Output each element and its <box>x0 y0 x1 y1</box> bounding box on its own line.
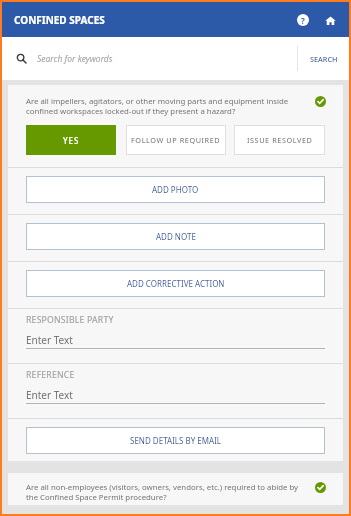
staticText: Are all impellers, agitators, or other m… <box>26 96 307 116</box>
button[interactable]: ADD PHOTO <box>26 176 325 203</box>
staticText: SEND DETAILS BY EMAIL <box>130 435 222 446</box>
staticText: CONFINED SPACES <box>14 13 105 27</box>
staticText: REFERENCE <box>26 369 75 381</box>
button[interactable]: ADD CORRECTIVE ACTION <box>26 270 325 297</box>
button[interactable]: Home <box>318 8 342 32</box>
button[interactable]: YES <box>26 125 116 155</box>
button[interactable]: ISSUE RESOLVED <box>234 125 325 155</box>
button[interactable]: Help <box>291 8 315 32</box>
button[interactable]: FOLLOW UP REQUIRED <box>126 125 226 155</box>
staticText: ADD NOTE <box>156 231 196 242</box>
button[interactable]: ADD NOTE <box>26 223 325 250</box>
staticText: Search for keywords <box>37 53 113 65</box>
staticText: ISSUE RESOLVED <box>247 135 313 145</box>
staticText: ADD CORRECTIVE ACTION <box>127 278 225 289</box>
button[interactable]: SEND DETAILS BY EMAIL <box>26 427 325 454</box>
staticText: RESPONSIBLE PARTY <box>26 314 114 326</box>
staticText: ? <box>301 15 305 26</box>
staticText: SEARCH <box>310 54 338 64</box>
staticText: Enter Text <box>26 388 73 402</box>
staticText: FOLLOW UP REQUIRED <box>131 135 221 145</box>
button[interactable]: SEARCH <box>298 37 349 80</box>
staticText: YES <box>63 135 80 146</box>
staticText: Enter Text <box>26 333 73 347</box>
staticText: ADD PHOTO <box>152 184 199 195</box>
staticText: Are all non-employees (visitors, owners,… <box>26 482 307 502</box>
